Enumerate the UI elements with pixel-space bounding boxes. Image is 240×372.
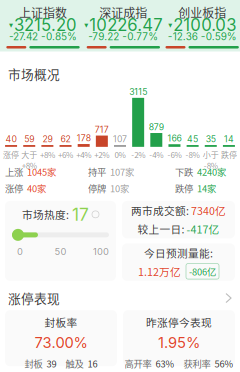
staticText: -2% <box>131 149 145 160</box>
staticText: 跌停 <box>221 149 237 160</box>
staticText: 获利率 <box>183 357 210 370</box>
staticText: -8% <box>204 159 218 171</box>
staticText: 市场热度: <box>22 207 69 222</box>
staticText: 3215.20 <box>14 15 77 35</box>
staticText: -0.85% <box>41 30 77 43</box>
staticText: -0.59% <box>201 30 237 43</box>
staticText: 100 <box>93 246 109 257</box>
staticText: 73.00% <box>34 334 87 351</box>
staticText: 昨涨停今表现 <box>146 314 212 330</box>
staticText: -417亿 <box>186 221 219 236</box>
staticText: 45 <box>187 134 198 144</box>
staticText: ▾ <box>84 20 88 30</box>
staticText: 涨停 <box>5 181 23 195</box>
staticText: 879 <box>149 122 164 132</box>
staticText: 停牌 <box>88 181 106 195</box>
staticText: 4240家 <box>197 165 226 178</box>
staticText: 持平 <box>88 165 106 178</box>
staticText: -79.22 <box>88 30 119 43</box>
staticText: 1.95% <box>158 334 200 351</box>
staticText: 3115 <box>129 87 147 97</box>
staticText: 封板率 <box>44 314 77 330</box>
staticText: 10家 <box>110 181 129 195</box>
staticText: 较上一日: <box>137 221 184 236</box>
staticText: 40家 <box>27 181 46 195</box>
staticText: 下跌 <box>175 165 193 178</box>
staticText: -12.36 <box>168 30 198 43</box>
staticText: 717 <box>95 124 109 135</box>
staticText: -806亿 <box>189 265 216 278</box>
staticText: +8% <box>40 149 55 160</box>
staticText: 7340亿 <box>191 203 226 218</box>
staticText: 深证成指 <box>99 4 147 21</box>
staticText: 40 <box>6 134 17 144</box>
staticText: -6% <box>167 149 181 160</box>
staticText: 市场概况 <box>8 64 60 83</box>
staticText: 0% <box>114 149 125 160</box>
staticText: 14家 <box>197 181 216 195</box>
staticText: +2% <box>94 149 109 160</box>
staticText: 高开率 <box>124 357 151 370</box>
staticText: ▾ <box>9 20 13 30</box>
staticText: +8% <box>22 159 37 171</box>
staticText: 封板 <box>24 357 42 370</box>
staticText: 跌停 <box>175 181 193 195</box>
staticText: 166 <box>167 133 181 143</box>
staticText: 178 <box>77 133 91 143</box>
staticText: 14 <box>224 134 234 144</box>
staticText: 63% <box>155 357 174 370</box>
staticText: 107 <box>113 134 127 144</box>
staticText: 35 <box>206 134 216 144</box>
staticText: 创业板指 <box>178 4 226 21</box>
staticText: 上证指数 <box>19 4 67 21</box>
staticText: -8% <box>186 149 200 160</box>
staticText: -27.42 <box>9 30 38 43</box>
staticText: 17 <box>72 204 89 225</box>
staticText: 29 <box>42 134 52 144</box>
staticText: 两市成交额: <box>131 203 189 218</box>
staticText: 2100.03 <box>173 15 236 35</box>
staticText: 59 <box>24 134 34 144</box>
staticText: -4% <box>149 149 163 160</box>
staticText: 涨停表现 <box>8 289 60 307</box>
staticText: 1.12万亿 <box>138 264 181 279</box>
staticText: 0 <box>17 246 23 257</box>
staticText: +6% <box>58 149 73 160</box>
staticText: 上涨 <box>5 165 23 178</box>
staticText: 大于 <box>21 149 37 160</box>
staticText: 触及 <box>65 357 83 370</box>
staticText: 涨停 <box>3 149 19 160</box>
staticText: 16 <box>87 357 97 370</box>
staticText: 10226.47 <box>89 15 162 35</box>
staticText: 小于 <box>203 149 219 160</box>
staticText: 50 <box>54 246 66 257</box>
staticText: 56% <box>214 357 233 370</box>
staticText: 62 <box>60 134 70 144</box>
staticText: 1045家 <box>27 165 56 178</box>
staticText: ▾ <box>168 20 172 30</box>
staticText: +4% <box>76 149 91 160</box>
staticText: 107家 <box>110 165 134 178</box>
staticText: -0.77% <box>122 30 158 43</box>
staticText: 今日预测量能: <box>144 245 213 260</box>
staticText: 39 <box>46 357 56 370</box>
